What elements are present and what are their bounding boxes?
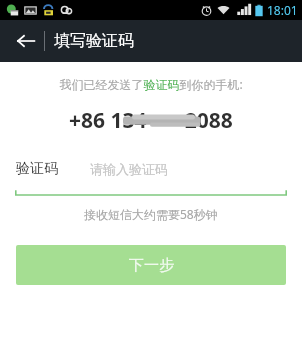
staticText: 下一步 bbox=[129, 256, 174, 275]
button[interactable]: Back bbox=[8, 23, 44, 59]
staticText: 接收短信大约需要58秒钟 bbox=[84, 206, 218, 222]
button[interactable]: 验证码 bbox=[16, 155, 286, 183]
staticText: 填写验证码 bbox=[54, 31, 134, 51]
staticText: 18:01 bbox=[267, 2, 298, 18]
staticText: 请输入验证码 bbox=[90, 161, 168, 177]
button[interactable]: 下一步 bbox=[16, 245, 286, 285]
staticText: +86 134 2088 bbox=[69, 106, 233, 135]
staticText: 验证码 bbox=[16, 160, 58, 178]
staticText: 我们已经发送了验证码到你的手机: bbox=[59, 76, 243, 92]
